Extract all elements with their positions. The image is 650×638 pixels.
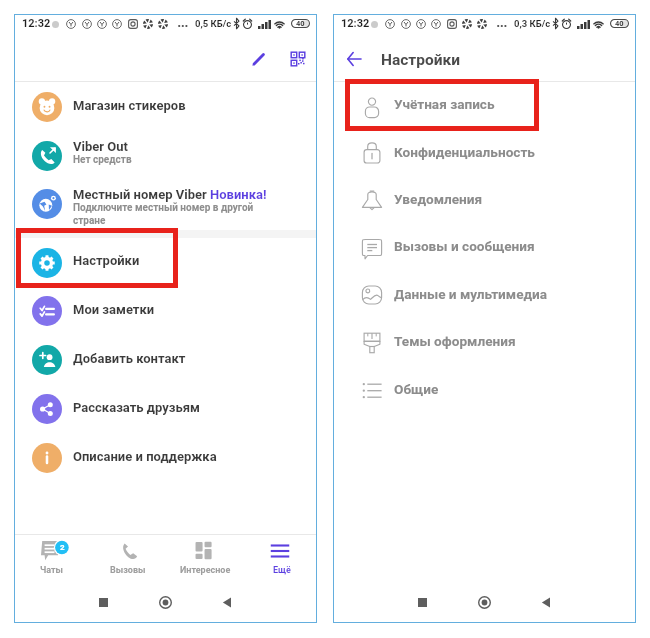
button[interactable] [333, 177, 636, 224]
staticText: 0,3 КБ/c [514, 18, 551, 29]
staticText: Интересное [180, 565, 231, 576]
button[interactable] [333, 367, 636, 414]
button[interactable] [14, 239, 317, 287]
staticText: 12:32 [341, 17, 370, 30]
staticText: Ещё [273, 565, 291, 576]
button[interactable] [14, 336, 317, 384]
button[interactable]: Scan QR code [285, 46, 311, 72]
button[interactable]: New message [245, 46, 271, 72]
button[interactable] [16, 535, 88, 582]
button[interactable] [333, 82, 636, 129]
staticText: 40 [296, 19, 305, 28]
staticText: Общие [394, 381, 439, 397]
staticText: Чаты [40, 565, 64, 576]
staticText: Подключите местный номер в другой стране [73, 202, 254, 226]
staticText: Мои заметки [73, 302, 155, 317]
staticText: 0,5 КБ/c [195, 18, 232, 29]
staticText: Viber Out [73, 139, 128, 154]
button[interactable] [92, 535, 164, 582]
button[interactable] [333, 272, 636, 319]
button[interactable]: Back [536, 592, 556, 612]
staticText: 2 [60, 543, 65, 552]
button[interactable]: Home [155, 592, 175, 612]
staticText: Магазин стикеров [73, 98, 186, 113]
staticText: Местный номер Viber Новинка! [73, 187, 267, 202]
staticText: Учётная запись [394, 96, 495, 112]
staticText: Нет средств [73, 154, 132, 166]
button[interactable] [14, 287, 317, 335]
button[interactable] [14, 434, 317, 482]
staticText: Настройки [381, 51, 461, 69]
staticText: Конфиденциальность [394, 144, 535, 160]
button[interactable] [169, 535, 241, 582]
staticText: Уведомления [394, 191, 483, 207]
button[interactable] [14, 180, 317, 228]
button[interactable]: Recent apps [93, 592, 113, 612]
button[interactable]: Back [217, 592, 237, 612]
button[interactable]: Back [341, 46, 367, 72]
button[interactable]: Recent apps [412, 592, 432, 612]
staticText: Описание и поддержка [73, 449, 217, 464]
button[interactable] [333, 224, 636, 271]
staticText: Вызовы [110, 565, 146, 576]
button[interactable] [333, 319, 636, 366]
button[interactable] [14, 132, 317, 180]
button[interactable]: Home [474, 592, 494, 612]
staticText: Добавить контакт [73, 351, 186, 366]
staticText: Темы оформления [394, 333, 516, 349]
button[interactable] [14, 83, 317, 131]
staticText: 40 [615, 19, 624, 28]
button[interactable] [333, 130, 636, 177]
staticText: Настройки [73, 253, 140, 268]
button[interactable] [14, 385, 317, 433]
staticText: Вызовы и сообщения [394, 238, 535, 254]
staticText: Рассказать друзьям [73, 400, 200, 415]
staticText: 12:32 [22, 17, 51, 30]
button[interactable] [246, 535, 318, 582]
staticText: Данные и мультимедиа [394, 286, 547, 302]
